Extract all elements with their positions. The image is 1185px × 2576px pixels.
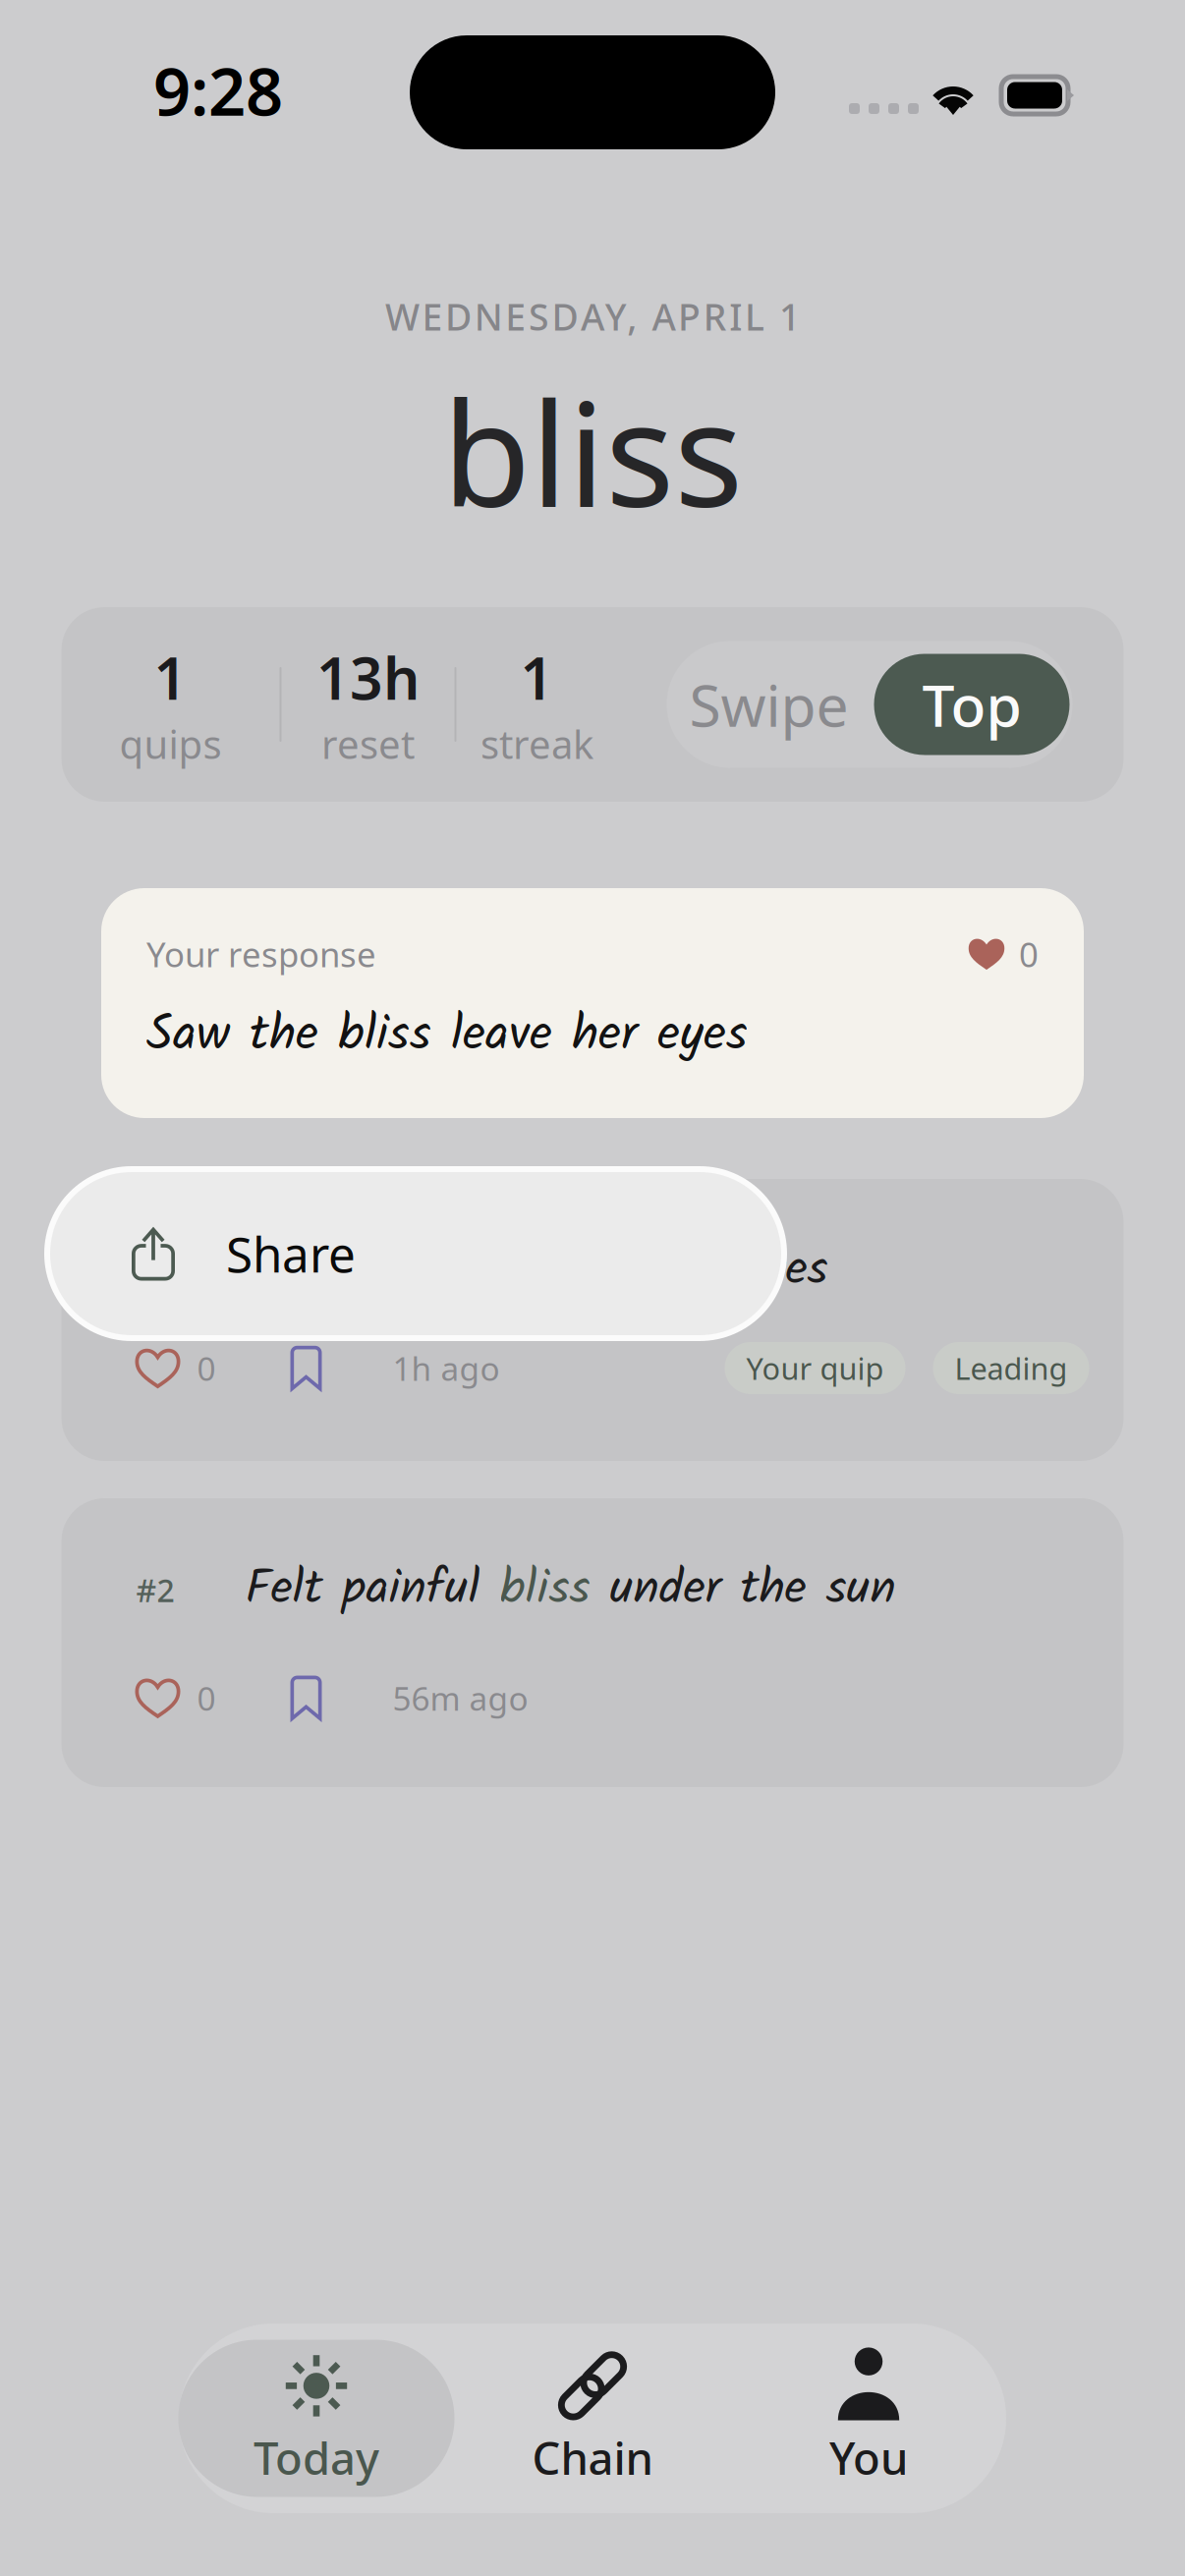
staticText: WEDNESDAY, APRIL 1: [385, 292, 800, 341]
staticText: 1: [520, 639, 554, 716]
staticText: under the sun: [590, 1551, 896, 1629]
staticText: 9:28: [153, 47, 283, 134]
button[interactable]: Share: [47, 1169, 784, 1338]
button[interactable]: You: [731, 2340, 1007, 2497]
staticText: Felt painful: [245, 1551, 500, 1629]
staticText: Your quip: [746, 1348, 884, 1388]
staticText: bliss: [500, 1551, 590, 1629]
staticText: bliss: [442, 355, 743, 547]
staticText: 13h: [316, 639, 420, 716]
staticText: leave her eyes: [521, 1232, 828, 1309]
button[interactable]: #2: [61, 1498, 1124, 1787]
staticText: Top: [922, 666, 1021, 743]
staticText: Your response: [146, 931, 376, 977]
staticText: streak: [480, 718, 593, 770]
staticText: quips: [119, 718, 222, 770]
staticText: #2: [136, 1569, 174, 1611]
staticText: Saw the: [245, 1232, 431, 1309]
button[interactable]: Today: [178, 2340, 454, 2497]
staticText: Saw the bliss leave her eyes: [146, 996, 748, 1076]
staticText: 0: [197, 1346, 216, 1390]
staticText: Chain: [532, 2428, 653, 2487]
button[interactable]: Swipe: [667, 641, 871, 768]
staticText: Swipe: [689, 666, 848, 743]
button[interactable]: #1: [61, 1179, 1124, 1461]
staticText: Today: [254, 2428, 379, 2487]
staticText: 1: [154, 639, 187, 716]
staticText: You: [829, 2428, 908, 2487]
staticText: 0: [197, 1676, 216, 1720]
staticText: 56m ago: [393, 1676, 528, 1720]
button[interactable]: Top: [871, 641, 1072, 768]
staticText: reset: [321, 718, 415, 770]
staticText: Leading: [955, 1348, 1068, 1388]
staticText: 1h ago: [393, 1346, 500, 1390]
staticText: 0: [1019, 931, 1039, 977]
staticText: Share: [226, 1221, 356, 1286]
button[interactable]: Chain: [454, 2340, 731, 2497]
staticText: #1: [136, 1250, 174, 1292]
